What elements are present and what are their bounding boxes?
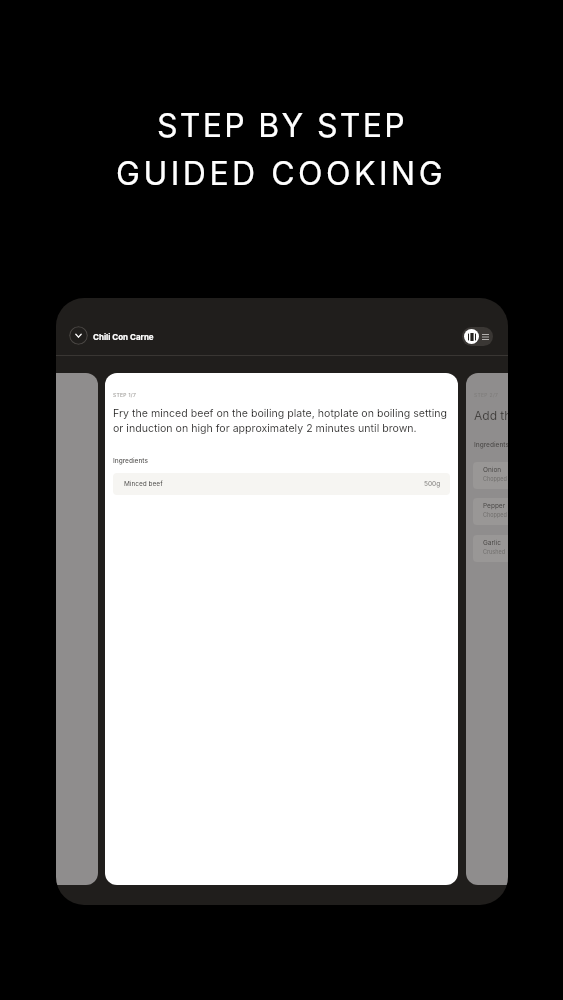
staticText: Onion xyxy=(483,466,502,474)
staticText: STEP 1/7 xyxy=(113,392,137,398)
staticText: 500g xyxy=(424,480,441,488)
staticText: Chopped xyxy=(483,476,507,483)
staticText: Minced beef xyxy=(124,480,163,488)
button[interactable]: Minced beef xyxy=(113,473,450,495)
staticText: Chopped xyxy=(483,512,507,519)
staticText: Fry the minced beef on the boiling plate… xyxy=(113,407,449,434)
button[interactable] xyxy=(56,373,98,885)
staticText: STEP 2/7 xyxy=(474,392,499,398)
button[interactable]: STEP 1/7 xyxy=(105,373,458,885)
staticText: Pepper xyxy=(483,502,506,510)
staticText: Ingredients xyxy=(474,441,508,449)
staticText: GUIDED COOKING xyxy=(116,154,447,193)
staticText: STEP BY STEP xyxy=(157,106,407,145)
button[interactable]: STEP 2/7 xyxy=(466,373,508,885)
staticText: Add the ingredients xyxy=(474,408,508,423)
staticText: Garlic xyxy=(483,539,501,547)
staticText: Ingredients xyxy=(113,457,148,465)
staticText: Crushed xyxy=(483,549,506,556)
button[interactable] xyxy=(462,327,493,346)
button[interactable] xyxy=(69,326,88,345)
staticText: Chili Con Carne xyxy=(93,332,154,342)
